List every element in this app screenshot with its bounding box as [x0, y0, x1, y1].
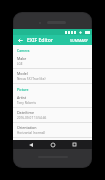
staticText: Date/time	[17, 110, 34, 115]
button[interactable]: Home	[48, 140, 57, 149]
staticText: 2016-09-07 13:54:46	[17, 116, 47, 120]
button[interactable]: Orientation	[13, 123, 92, 138]
staticText: Picture	[17, 87, 29, 92]
staticText: Horizontal (normal)	[17, 131, 46, 135]
button[interactable]: Date/time	[13, 108, 92, 123]
button[interactable]: Back	[16, 36, 24, 44]
staticText: LGE	[17, 62, 23, 66]
staticText: Tony Roberts	[17, 101, 36, 105]
button[interactable]: Back	[26, 140, 35, 149]
staticText: Model	[17, 71, 28, 76]
button[interactable]: Make	[13, 54, 92, 69]
button[interactable]: Artist	[13, 93, 92, 108]
staticText: Camera	[17, 48, 30, 53]
staticText: Make	[17, 56, 27, 61]
staticText: EXIF Editor	[27, 37, 53, 44]
button[interactable]: Recent apps	[70, 140, 79, 149]
staticText: SUMMARY	[70, 38, 88, 43]
button[interactable]: SUMMARY	[69, 37, 89, 44]
staticText: Artist	[17, 95, 27, 100]
button[interactable]: Model	[13, 69, 92, 84]
staticText: Nexus 5X (True like)	[17, 77, 46, 81]
staticText: Orientation	[17, 125, 37, 130]
